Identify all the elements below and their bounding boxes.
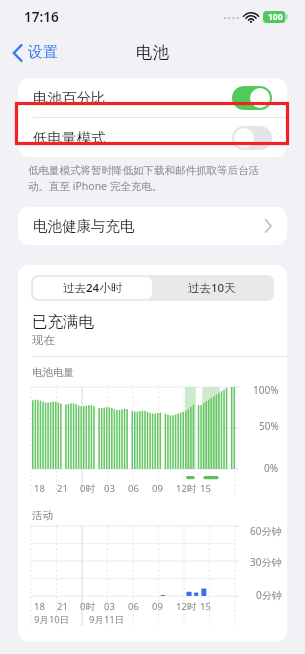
staticText: 18 [34, 482, 45, 495]
other: 进入 [264, 219, 272, 233]
staticText: 0% [264, 461, 279, 475]
button[interactable]: 低电量模式 [18, 118, 287, 157]
staticText: 03 [104, 600, 115, 613]
staticText: 0时 [80, 600, 95, 613]
button[interactable]: 过去10天 [152, 277, 272, 299]
staticText: 17:16 [24, 8, 59, 26]
staticText: 过去24小时 [63, 280, 123, 296]
staticText: 0分钟 [256, 588, 282, 602]
staticText: 60分钟 [250, 524, 282, 538]
staticText: 18 [34, 600, 45, 613]
staticText: 50% [259, 419, 279, 433]
staticText: 21 [57, 482, 68, 495]
staticText: 03 [104, 482, 115, 495]
button[interactable]: 关闭 [232, 126, 272, 150]
staticText: 06 [128, 482, 139, 495]
button[interactable]: 电池健康与充电 [18, 207, 287, 245]
staticText: 09 [152, 482, 163, 495]
staticText: 12时 [176, 482, 197, 495]
staticText: 100 [268, 11, 283, 23]
staticText: 现在 [32, 333, 55, 347]
button[interactable]: 开启 [232, 86, 272, 110]
staticText: 过去10天 [188, 280, 236, 296]
staticText: 电池百分比 [33, 89, 232, 107]
button[interactable]: 设置 [0, 39, 66, 66]
staticText: 设置 [28, 43, 58, 62]
staticText: 低电量模式 [33, 129, 232, 147]
staticText: 09 [152, 600, 163, 613]
staticText: 100% [253, 383, 279, 397]
staticText: 12时 [176, 600, 197, 613]
staticText: 9月11日 [89, 613, 125, 626]
staticText: 0时 [80, 482, 95, 495]
staticText: 电池 [136, 42, 169, 63]
staticText: 9月10日 [34, 613, 70, 626]
staticText: 15 [200, 482, 211, 495]
staticText: 电池电量 [32, 366, 74, 379]
staticText: 21 [57, 600, 68, 613]
staticText: 活动 [32, 509, 53, 522]
staticText: 电池健康与充电 [33, 217, 264, 235]
staticText: 已充满电 [32, 312, 94, 332]
staticText: 15 [200, 600, 211, 613]
staticText: 30分钟 [250, 555, 282, 569]
button[interactable]: 电池百分比 [18, 78, 287, 117]
staticText: 低电量模式将暂时降低如下载和邮件抓取等后台活动。直至 iPhone 完全充电。 [28, 164, 279, 193]
staticText: 06 [128, 600, 139, 613]
button[interactable]: 过去24小时 [33, 277, 152, 299]
